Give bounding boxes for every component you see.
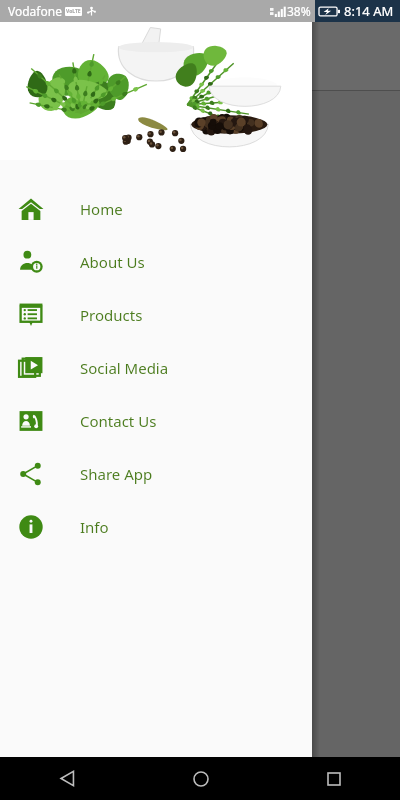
staticText: VoLTE <box>66 8 81 15</box>
staticText: Share App <box>80 464 153 484</box>
staticText: Contact Us <box>80 411 157 431</box>
button[interactable]: About Us <box>0 235 312 288</box>
staticText: Vodafone <box>8 3 62 19</box>
staticText: 8:14 AM <box>344 2 394 20</box>
button[interactable]: Home <box>134 757 267 800</box>
staticText: Info <box>80 517 109 537</box>
staticText: 38% <box>287 3 311 19</box>
button[interactable]: Recent apps <box>267 757 400 800</box>
staticText: Social Media <box>80 358 169 378</box>
button[interactable]: Info <box>0 500 312 553</box>
staticText: Products <box>80 305 143 325</box>
button[interactable]: Back <box>0 757 134 800</box>
button[interactable]: Contact Us <box>0 394 312 447</box>
staticText: Home <box>80 199 123 219</box>
button[interactable]: Social Media <box>0 341 312 394</box>
staticText: About Us <box>80 252 145 272</box>
button[interactable]: Products <box>0 288 312 341</box>
button[interactable]: Share App <box>0 447 312 500</box>
button[interactable]: Home <box>0 182 312 235</box>
